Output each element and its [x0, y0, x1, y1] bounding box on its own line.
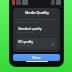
button[interactable]: Standard quality	[16, 25, 57, 36]
staticText: Standard quality	[18, 27, 42, 31]
staticText: Faster to send	[18, 31, 34, 34]
button[interactable]	[22, 0, 28, 5]
button[interactable]	[51, 0, 55, 5]
button[interactable]	[56, 0, 61, 5]
staticText: Up to 6 MB	[18, 44, 30, 47]
staticText: and sends in a faster.	[16, 20, 57, 23]
staticText: Media Quality	[25, 10, 49, 15]
staticText: HD quality is faster. Standard quality u…	[16, 17, 57, 20]
staticText: Done	[32, 56, 41, 60]
other: Selected	[51, 42, 55, 46]
button[interactable]	[12, 0, 15, 5]
button[interactable]: HD quality	[16, 38, 57, 49]
staticText: HD quality	[18, 40, 34, 44]
button[interactable]	[16, 0, 21, 5]
button[interactable]: Done	[13, 54, 60, 61]
